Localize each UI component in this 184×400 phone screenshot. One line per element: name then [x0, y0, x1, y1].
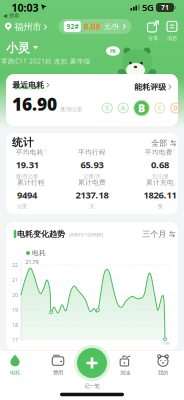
staticText: 元/升 [104, 22, 120, 31]
button[interactable]: 分享 [147, 20, 159, 42]
staticText: 累计充电 [146, 178, 174, 187]
button[interactable]: 消息 [166, 20, 178, 42]
button[interactable]: 费用 [51, 354, 64, 376]
button[interactable]: 加油 [118, 354, 131, 376]
staticText: 消息 [167, 35, 177, 42]
staticText: 统计 [12, 136, 34, 149]
staticText: 平均电费 [145, 148, 173, 156]
button[interactable]: 92# [59, 19, 131, 34]
staticText: 22 [12, 261, 18, 269]
button[interactable]: 最近电耗 [12, 80, 50, 90]
button[interactable]: 我的 [156, 354, 169, 376]
staticText: 16.90 [12, 92, 57, 115]
staticText: 2137.18 [75, 189, 108, 201]
staticText: 92# [66, 22, 78, 31]
staticText: 0.68 [151, 158, 169, 171]
staticText: 9494 [17, 189, 37, 201]
staticText: 元 [89, 203, 94, 210]
staticText: ◀ 搜索 [3, 12, 19, 19]
staticText: C [158, 104, 162, 112]
staticText: 5G [142, 1, 154, 14]
button[interactable]: 能耗评级 [134, 82, 172, 92]
staticText: 度 [157, 203, 162, 210]
staticText: 电耗 [32, 249, 46, 257]
staticText: 累计行程 [17, 178, 45, 187]
staticText: 10:03 [11, 0, 38, 15]
button[interactable]: 记一笔 [74, 345, 110, 381]
staticText: 累计电费 [78, 178, 106, 187]
staticText: 能耗评级 [134, 82, 166, 92]
staticText: 福州市 [14, 21, 41, 33]
staticText: 加油 [120, 369, 130, 376]
staticText: ? [173, 148, 175, 153]
staticText: 全部 [151, 138, 167, 148]
staticText: 71 [161, 3, 169, 12]
staticText: B [138, 101, 145, 115]
staticText: 平均电耗 [16, 148, 44, 156]
staticText: 公里 [17, 203, 27, 210]
staticText: 记一笔 [84, 383, 99, 389]
staticText: 度/百公里 [16, 173, 38, 180]
staticText: D [173, 104, 178, 112]
staticText: A [121, 104, 126, 112]
staticText: 元/公里 [151, 173, 168, 180]
staticText: 三个月 [142, 229, 166, 239]
staticText: Hi [110, 47, 116, 55]
staticText: 公里/天 [83, 173, 100, 180]
staticText: 零跑C11 2021款 改款 豪华版 [1, 57, 91, 65]
staticText: 平均行程 [78, 148, 106, 156]
staticText: 19.31 [16, 158, 39, 171]
staticText: 小灵 [6, 41, 30, 55]
staticText: ? [44, 148, 46, 153]
staticText: (KWH/100KM) [68, 231, 103, 238]
staticText: 10/8 [162, 340, 169, 346]
staticText: 1826.11 [143, 189, 176, 201]
button[interactable]: 小灵 [6, 41, 38, 55]
staticText: 分享 [148, 35, 158, 42]
staticText: 65.93 [80, 158, 103, 171]
button[interactable]: 福州市 [5, 21, 47, 33]
staticText: 最近电耗 [12, 80, 44, 90]
button[interactable]: 三个月 [142, 229, 176, 239]
staticText: 电耗 [10, 369, 20, 376]
staticText: S [105, 104, 109, 112]
staticText: 8.08 [84, 21, 101, 32]
staticText: 我的 [158, 369, 168, 376]
staticText: 费用 [53, 369, 63, 376]
staticText: 17 [12, 336, 18, 344]
staticText: 21 [12, 276, 18, 284]
staticText: 度/百公里 [60, 105, 82, 112]
staticText: 电耗变化趋势 [17, 229, 65, 239]
staticText: 20 [12, 291, 18, 299]
button[interactable]: 全部 [151, 138, 177, 148]
staticText: 21.79 [25, 258, 38, 266]
staticText: 19 [12, 306, 18, 314]
staticText: 18 [12, 321, 18, 329]
button[interactable]: 电耗 [8, 354, 21, 376]
